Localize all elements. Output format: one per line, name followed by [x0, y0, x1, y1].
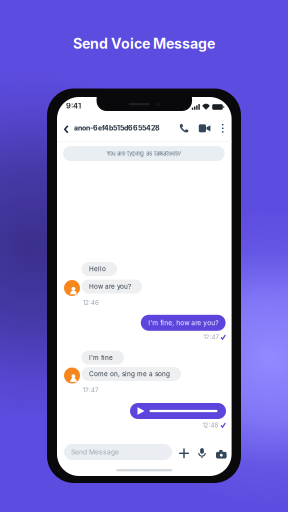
staticText: How are you?	[89, 283, 131, 290]
staticText: anon-6ef4b515d6655428	[74, 124, 160, 132]
staticText: Come on, sing me a song	[89, 370, 170, 378]
button[interactable]: Add attachment	[176, 445, 192, 461]
button[interactable]: More options	[218, 122, 227, 134]
staticText: 12:48	[202, 421, 218, 429]
staticText: Hello	[89, 265, 106, 273]
button[interactable]: Camera	[213, 445, 229, 461]
button[interactable]: Record voice message	[194, 445, 210, 461]
staticText: You are typing as talkative97	[106, 150, 181, 157]
button[interactable]: Send Message	[64, 444, 172, 460]
staticText: I'm fine, how are you?	[148, 319, 218, 327]
staticText: Send Voice Message	[73, 35, 215, 52]
staticText: Send Message	[71, 448, 119, 456]
button[interactable]: Back	[62, 122, 70, 137]
button[interactable]: Voice call	[176, 121, 192, 135]
staticText: 9:41	[66, 101, 81, 110]
staticText: 12:47	[83, 386, 98, 394]
staticText: 12:47	[203, 333, 218, 341]
staticText: I'm fine	[89, 354, 113, 361]
staticText: 12:46	[83, 299, 99, 306]
button[interactable]: Video call	[196, 121, 213, 135]
